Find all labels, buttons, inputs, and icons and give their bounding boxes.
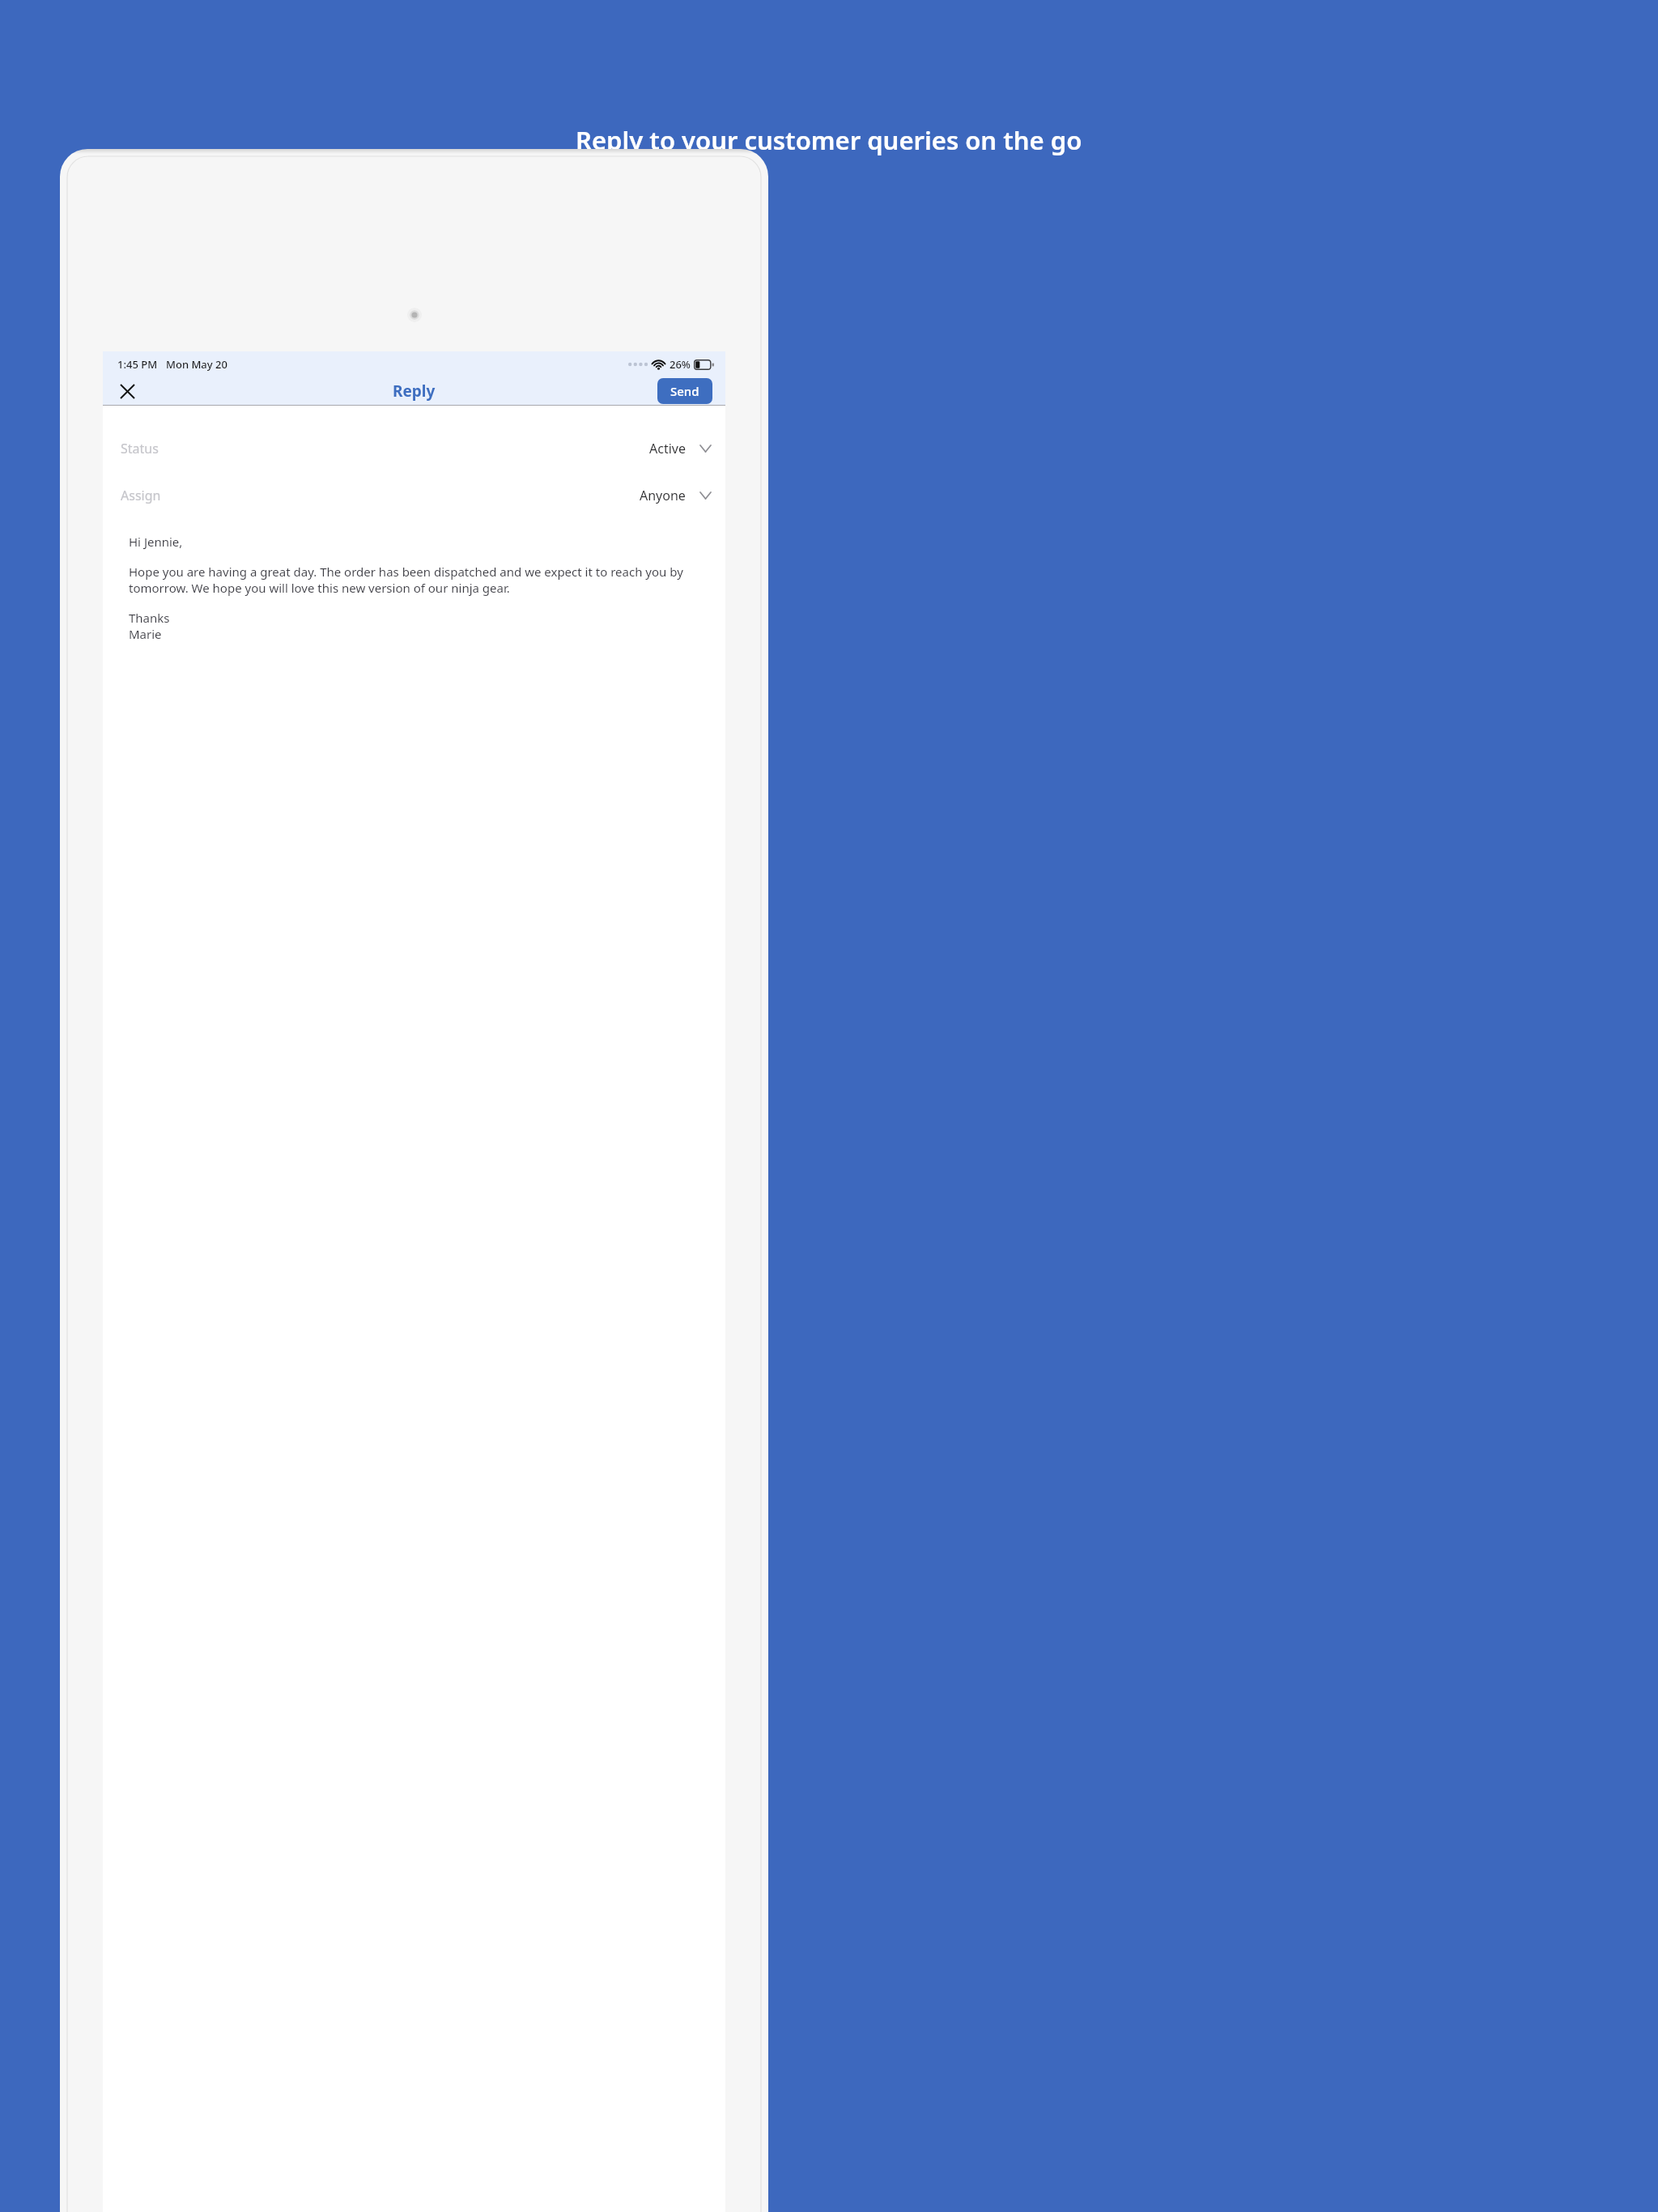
staticText: Reply xyxy=(393,381,436,402)
button[interactable]: Status xyxy=(103,435,725,462)
staticText: Active xyxy=(649,440,686,457)
staticText: Status xyxy=(121,440,159,457)
button[interactable]: Close xyxy=(114,378,140,404)
staticText: Assign xyxy=(121,487,161,504)
staticText: Mon May 20 xyxy=(166,357,227,372)
button[interactable]: Assign xyxy=(103,482,725,509)
staticText: Send xyxy=(670,383,699,399)
staticText: Hi Jennie, xyxy=(129,534,183,550)
staticText: Reply to your customer queries on the go xyxy=(576,123,1082,157)
staticText: Anyone xyxy=(640,487,686,504)
staticText: Marie xyxy=(129,626,162,642)
staticText: 1:45 PM xyxy=(117,357,158,372)
staticText: Hope you are having a great day. The ord… xyxy=(129,564,704,596)
staticText: 26% xyxy=(670,357,691,372)
button[interactable]: Send xyxy=(657,378,712,404)
staticText: Thanks xyxy=(129,610,170,626)
